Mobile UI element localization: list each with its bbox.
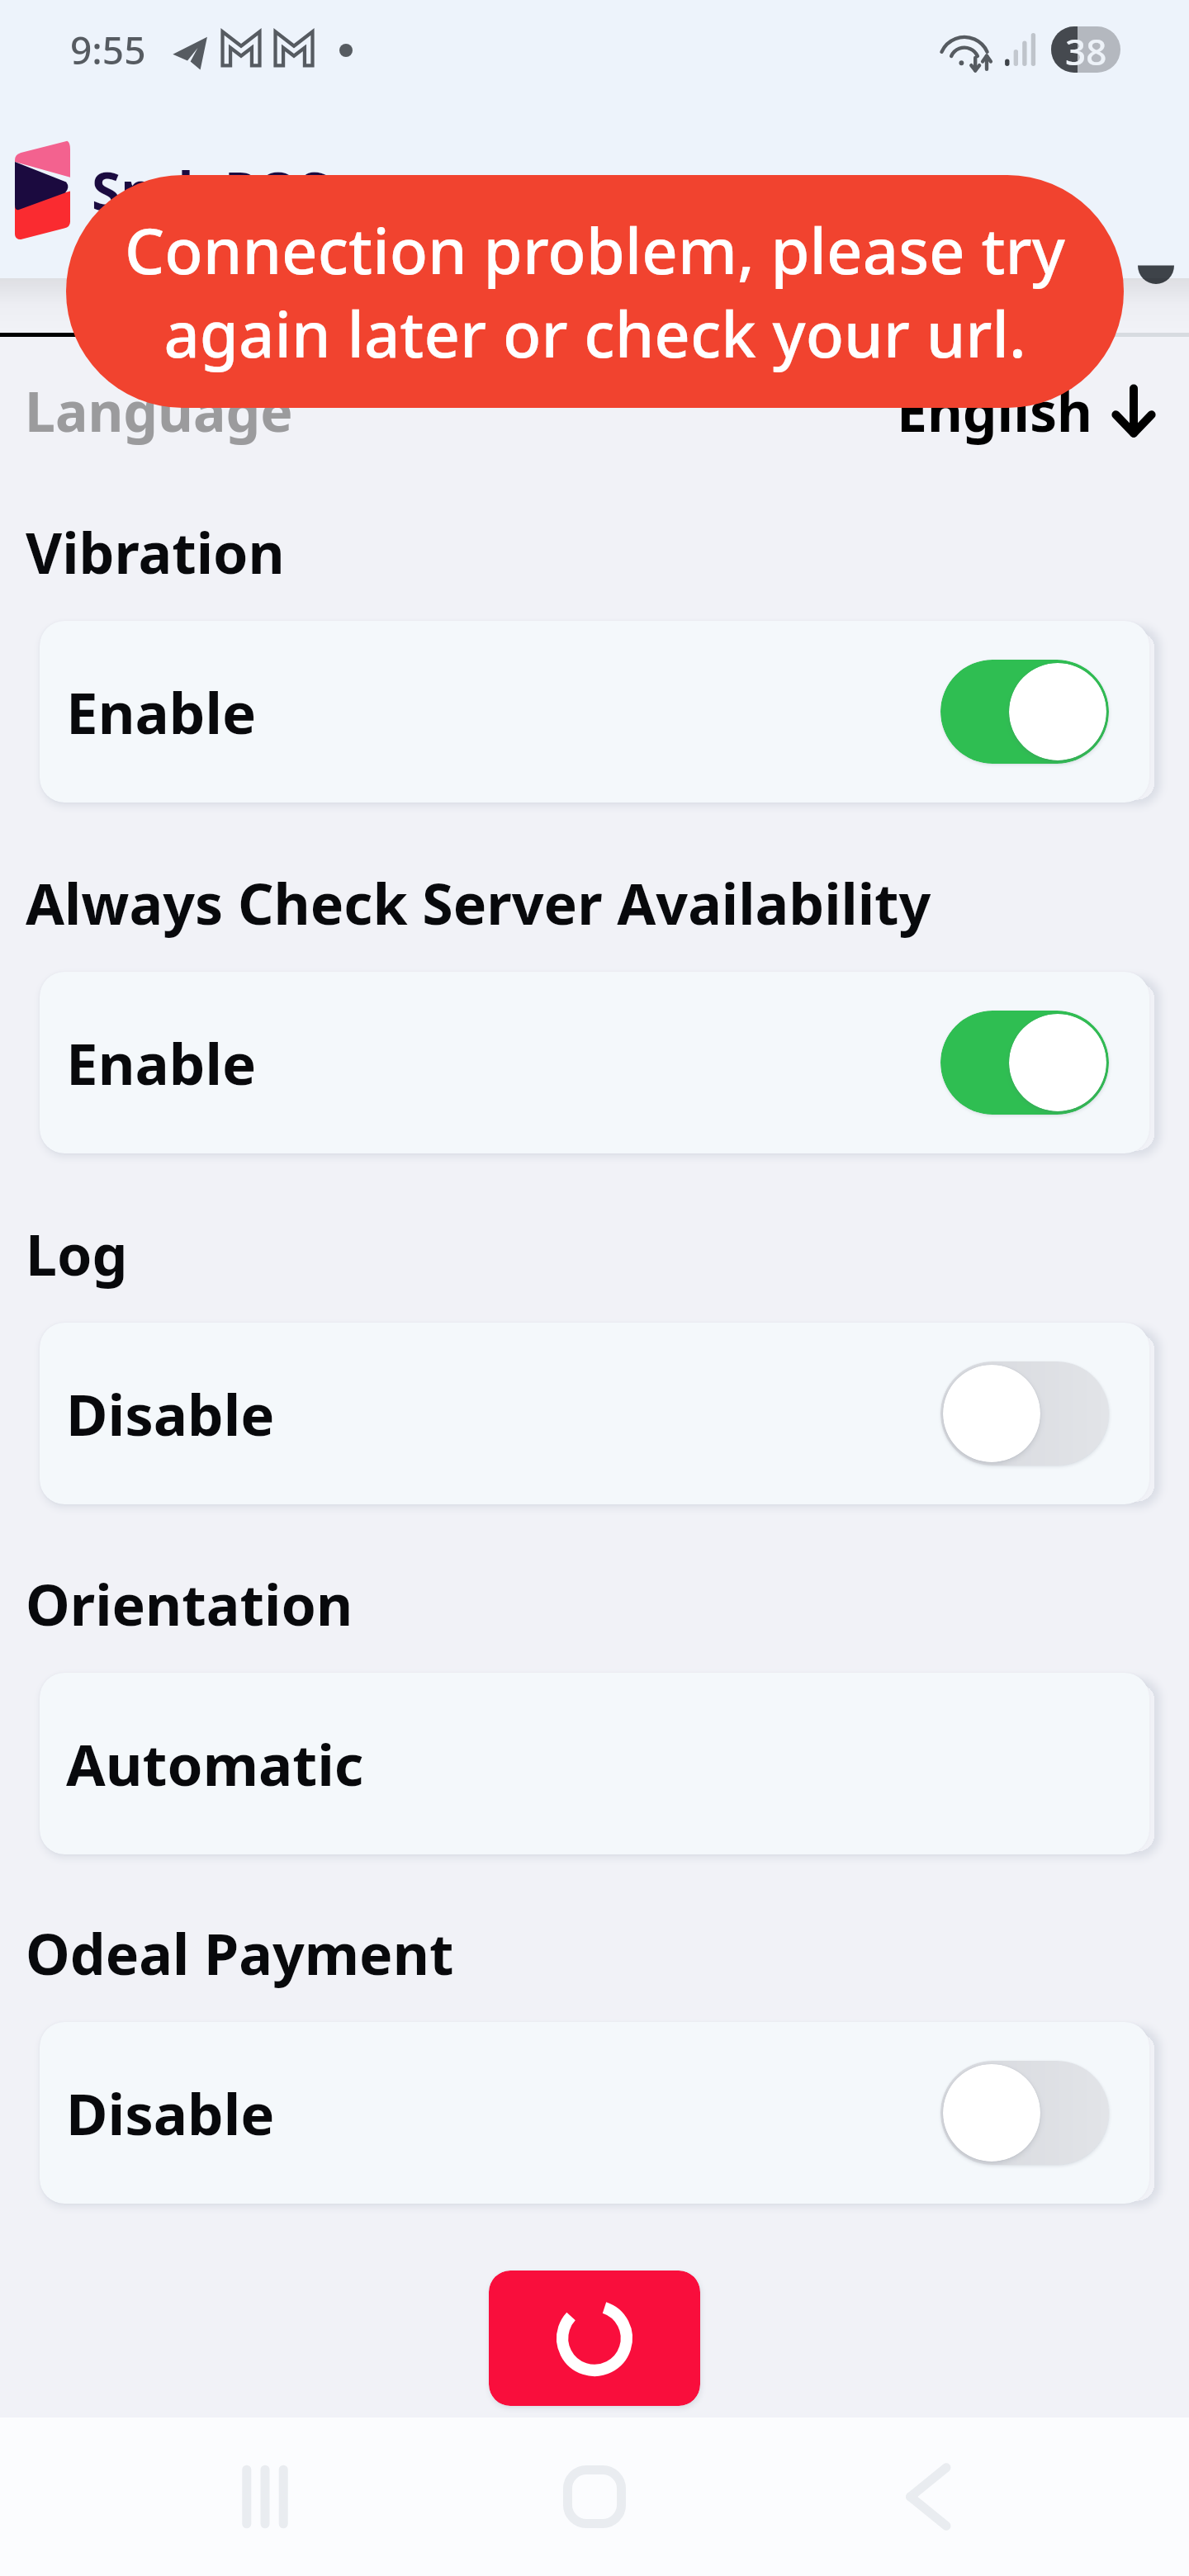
button[interactable]: Language: [0, 361, 1189, 460]
button[interactable]: [940, 1361, 1109, 1466]
staticText: Odeal Payment: [26, 1915, 454, 1991]
staticText: Orientation: [26, 1565, 353, 1642]
button[interactable]: [940, 660, 1109, 764]
staticText: Log: [26, 1215, 128, 1292]
button[interactable]: Recent apps: [203, 2417, 327, 2576]
staticText: Connection problem, please try again lat…: [94, 207, 1096, 376]
staticText: 38: [1065, 26, 1107, 73]
staticText: Enable: [66, 1024, 257, 1101]
staticText: Enable: [66, 673, 257, 751]
button[interactable]: [940, 2061, 1109, 2165]
button[interactable]: Disable: [40, 1323, 1149, 1504]
button[interactable]: Enable: [40, 621, 1149, 803]
button[interactable]: Disable: [40, 2022, 1149, 2204]
button[interactable]: Home: [533, 2417, 656, 2576]
staticText: Sprk POS: [92, 154, 329, 226]
staticText: 9:55: [70, 24, 146, 76]
button[interactable]: Enable: [40, 972, 1149, 1153]
button[interactable]: Back: [867, 2417, 991, 2576]
staticText: Always Check Server Availability: [26, 864, 931, 941]
staticText: Disable: [66, 2074, 275, 2152]
button[interactable]: Refresh: [489, 2271, 700, 2406]
staticText: Disable: [66, 1375, 275, 1452]
staticText: Automatic: [66, 1725, 364, 1802]
button[interactable]: [940, 1011, 1109, 1115]
staticText: English: [897, 373, 1093, 447]
staticText: Language: [25, 373, 293, 447]
button[interactable]: Automatic: [40, 1673, 1149, 1854]
staticText: Vibration: [26, 514, 285, 590]
